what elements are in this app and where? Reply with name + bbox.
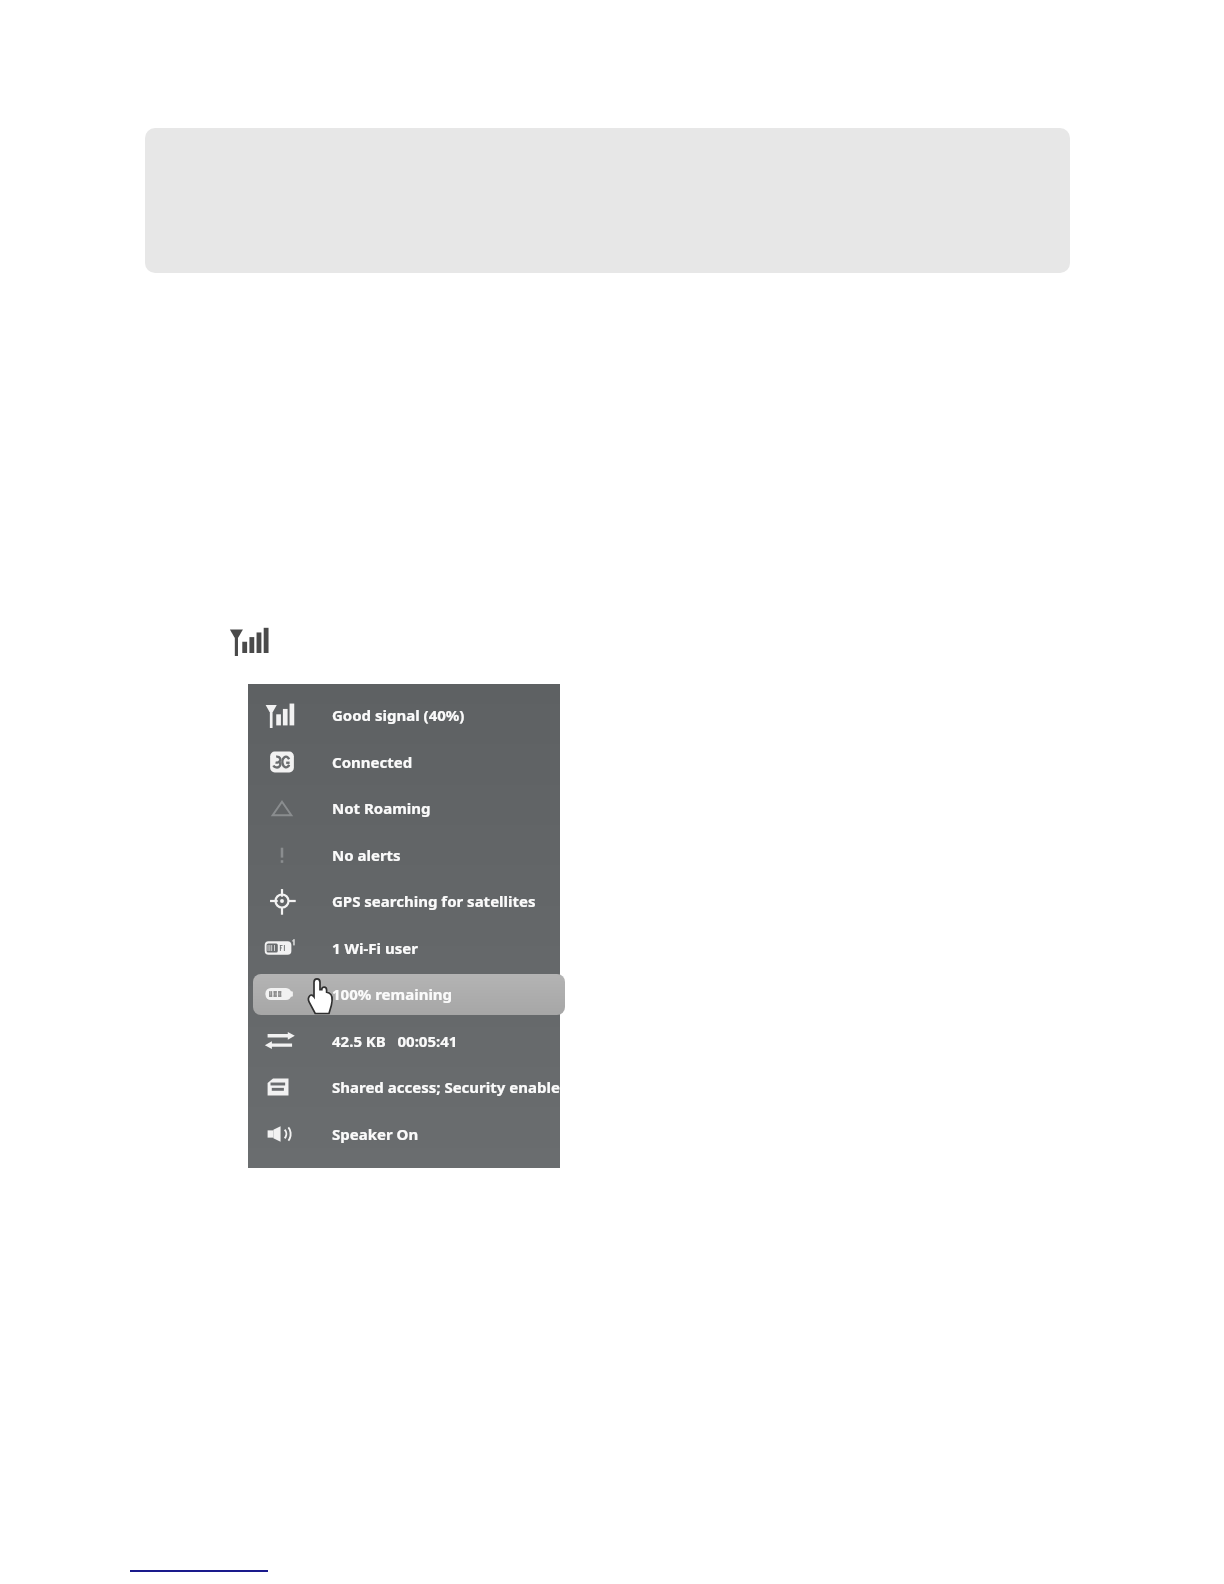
button[interactable]: 1 Wi-Fi user — [248, 928, 560, 968]
staticText: Connected — [332, 752, 413, 772]
button[interactable]: Signal strength indicator — [228, 626, 270, 656]
button[interactable]: 100% remaining — [248, 974, 560, 1014]
staticText: GPS searching for satellites — [332, 891, 536, 911]
staticText: No alerts — [332, 845, 401, 865]
button[interactable]: 42.5 KB 00:05:41 — [248, 1021, 560, 1061]
staticText: 1 Wi-Fi user — [332, 938, 418, 958]
button[interactable]: Good signal (40%) — [248, 695, 560, 735]
staticText: Not Roaming — [332, 798, 431, 818]
button[interactable]: Speaker On — [248, 1114, 560, 1154]
button[interactable]: Not Roaming — [248, 788, 560, 828]
staticText: Good signal (40%) — [332, 705, 465, 725]
button[interactable]: Shared access; Security enabled — [248, 1067, 560, 1107]
button[interactable]: No alerts — [248, 835, 560, 875]
staticText: Speaker On — [332, 1124, 419, 1144]
staticText: Shared access; Security enabled — [332, 1077, 560, 1097]
staticText: 42.5 KB 00:05:41 — [332, 1031, 458, 1051]
button[interactable]: Connected — [248, 742, 560, 782]
button[interactable]: GPS searching for satellites — [248, 881, 560, 921]
staticText: 100% remaining — [332, 984, 453, 1004]
